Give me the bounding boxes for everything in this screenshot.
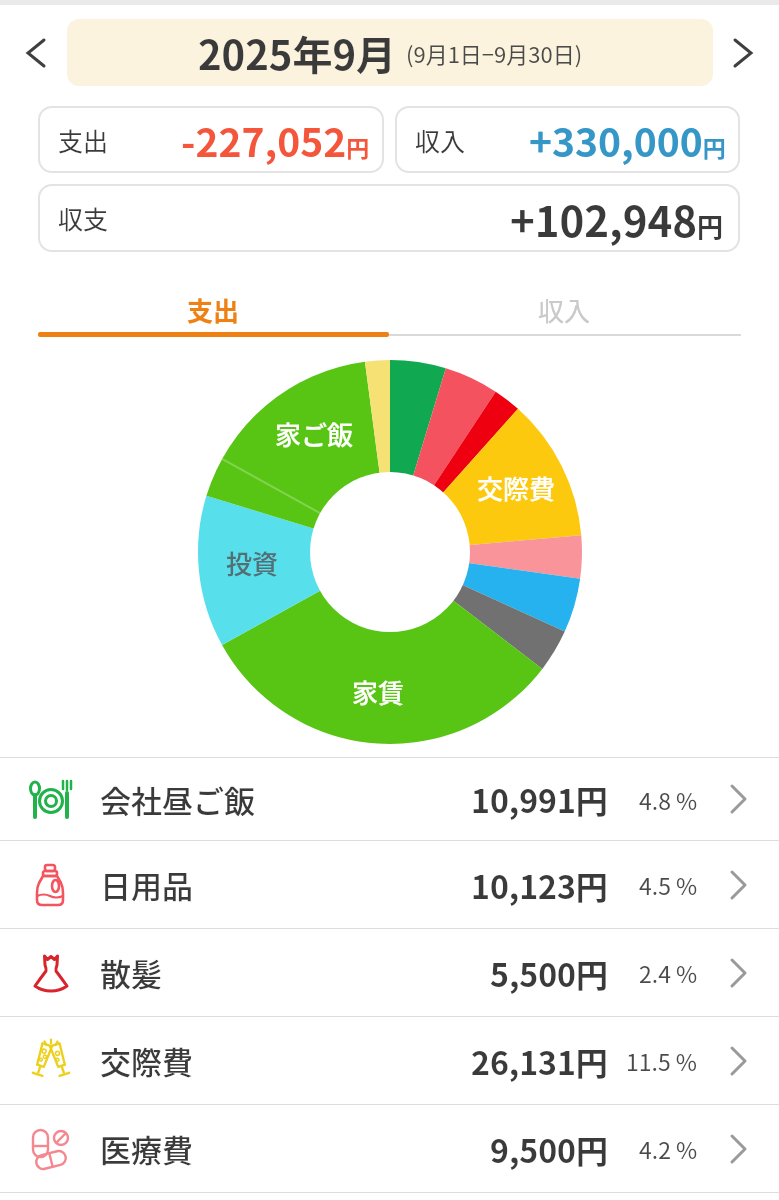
staticText: 5,500円	[490, 950, 608, 996]
staticText: 9,500円	[490, 1126, 608, 1172]
staticText: 収支	[58, 200, 109, 236]
button[interactable]: 会社昼ご飯	[0, 758, 779, 840]
staticText: 4.5 %	[639, 868, 698, 901]
staticText: 11.5 %	[626, 1044, 698, 1077]
staticText: 会社昼ご飯	[100, 777, 255, 822]
staticText: 日用品	[100, 862, 193, 907]
button[interactable]	[721, 31, 765, 75]
button[interactable]: 医療費	[0, 1105, 779, 1192]
staticText: +330,000円	[529, 112, 726, 168]
button[interactable]: 交際費	[0, 1017, 779, 1104]
staticText: 支出	[58, 122, 109, 158]
button[interactable]: 支出	[38, 106, 384, 173]
staticText: 収入	[415, 122, 466, 158]
staticText: 4.8 %	[639, 783, 698, 816]
staticText: 交際費	[100, 1038, 193, 1083]
button[interactable]: 散髪	[0, 929, 779, 1016]
staticText: 支出	[187, 291, 240, 329]
staticText: 10,991円	[471, 776, 608, 822]
staticText: 家賃	[352, 673, 405, 711]
staticText: +102,948円	[510, 188, 724, 249]
button[interactable]: 収支	[38, 184, 740, 252]
staticText: (9月1日−9月30日)	[406, 37, 583, 69]
staticText: 投資	[226, 544, 279, 582]
staticText: 交際費	[477, 469, 556, 507]
staticText: 10,123円	[471, 862, 608, 908]
button[interactable]: 支出	[38, 283, 389, 337]
staticText: 4.2 %	[639, 1132, 698, 1165]
staticText: 2025年9月	[198, 24, 396, 82]
staticText: 収入	[538, 291, 591, 329]
button[interactable]: 収入	[389, 283, 740, 337]
staticText: 26,131円	[471, 1038, 608, 1084]
button[interactable]: 日用品	[0, 841, 779, 928]
button[interactable]: 2025年9月	[67, 19, 713, 86]
staticText: -227,052円	[181, 112, 370, 168]
button[interactable]	[14, 31, 58, 75]
staticText: 家ご飯	[275, 415, 354, 453]
staticText: 散髪	[100, 950, 162, 995]
button[interactable]: 収入	[395, 106, 740, 173]
staticText: 2.4 %	[639, 956, 698, 989]
staticText: 医療費	[100, 1126, 193, 1171]
